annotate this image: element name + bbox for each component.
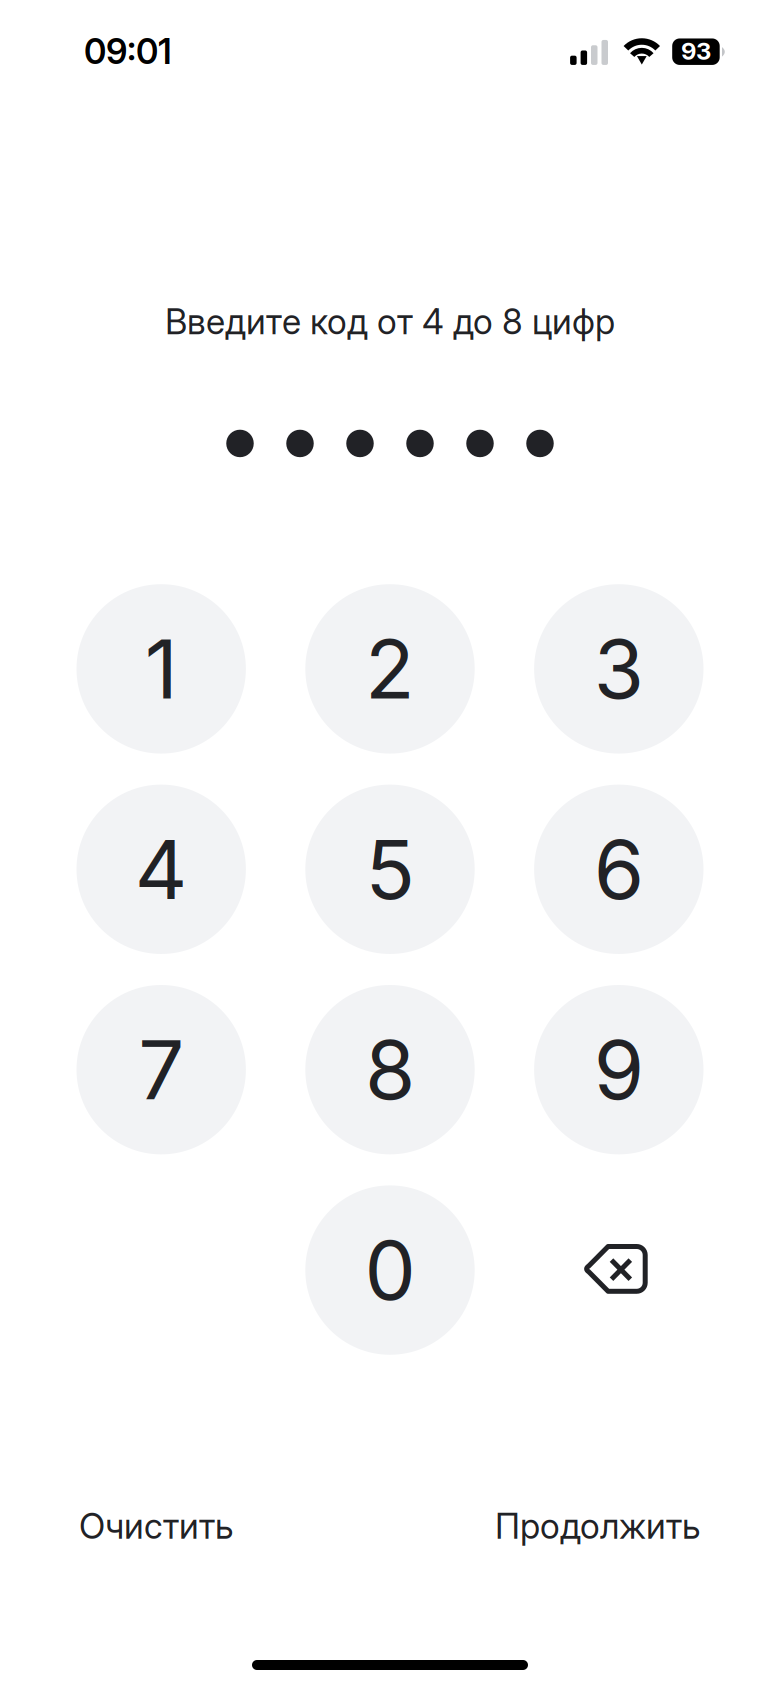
staticText: 6 bbox=[594, 820, 644, 918]
button[interactable]: 1 bbox=[76, 584, 246, 754]
button[interactable]: 0 bbox=[305, 1185, 475, 1355]
staticText: 09:01 bbox=[84, 30, 172, 72]
staticText: 0 bbox=[364, 1221, 415, 1319]
button[interactable]: 4 bbox=[76, 785, 246, 954]
button[interactable]: 5 bbox=[305, 785, 475, 954]
staticText: 9 bbox=[594, 1020, 644, 1119]
staticText: 93 bbox=[681, 36, 711, 65]
staticText: 1 bbox=[145, 620, 178, 718]
staticText: 8 bbox=[365, 1020, 415, 1119]
staticText: 7 bbox=[138, 1020, 184, 1119]
button[interactable]: Продолжить bbox=[495, 1505, 701, 1547]
button[interactable]: 7 bbox=[76, 985, 246, 1154]
button[interactable]: Delete bbox=[534, 1185, 703, 1355]
button[interactable]: 9 bbox=[534, 985, 703, 1154]
button[interactable]: 3 bbox=[534, 584, 703, 754]
button[interactable]: Очистить bbox=[79, 1505, 234, 1547]
staticText: Продолжить bbox=[495, 1505, 701, 1547]
staticText: 5 bbox=[365, 820, 414, 918]
button[interactable]: 6 bbox=[534, 785, 703, 954]
staticText: 4 bbox=[135, 820, 188, 918]
staticText: 2 bbox=[365, 620, 415, 718]
staticText: 3 bbox=[594, 620, 644, 718]
staticText: Введите код от 4 до 8 цифр bbox=[165, 301, 615, 343]
button[interactable]: 8 bbox=[305, 985, 475, 1154]
button[interactable]: 2 bbox=[305, 584, 475, 754]
staticText: Очистить bbox=[79, 1505, 234, 1547]
